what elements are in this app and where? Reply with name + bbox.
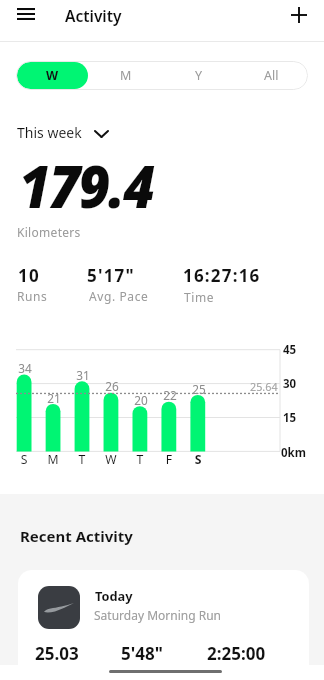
button[interactable]: Menu [6, 0, 44, 30]
staticText: 5'17" [87, 264, 135, 287]
staticText: 25 [183, 381, 215, 397]
staticText: T [124, 451, 156, 468]
button[interactable]: W [17, 62, 88, 89]
button[interactable]: This week [17, 119, 125, 143]
staticText: Time [184, 289, 215, 305]
staticText: S [8, 451, 40, 468]
staticText: 5'48" [121, 642, 163, 665]
staticText: 34 [9, 360, 41, 376]
staticText: 179.4 [19, 145, 153, 225]
staticText: 21 [38, 390, 70, 406]
staticText: W [46, 67, 59, 84]
staticText: Avg. Pace [89, 288, 149, 304]
staticText: 45 [283, 342, 297, 358]
staticText: 2:25:00 [207, 642, 266, 665]
staticText: 15 [283, 410, 297, 426]
staticText: Recent Activity [20, 526, 133, 546]
staticText: Activity [65, 5, 122, 26]
staticText: Y [195, 67, 203, 84]
staticText: F [153, 451, 185, 468]
staticText: Runs [17, 288, 48, 304]
staticText: M [120, 67, 132, 84]
button[interactable]: M [90, 62, 161, 89]
staticText: 25.64 [250, 379, 278, 394]
staticText: 20 [125, 392, 157, 408]
staticText: M [37, 451, 69, 468]
staticText: S [182, 451, 214, 468]
staticText: 31 [67, 367, 99, 383]
staticText: 22 [154, 387, 186, 403]
staticText: Today [95, 587, 133, 604]
button[interactable]: Y [163, 62, 234, 89]
button[interactable]: Add activity [280, 0, 318, 30]
staticText: 30 [283, 376, 297, 392]
staticText: 26 [96, 378, 128, 394]
staticText: W [95, 451, 127, 468]
staticText: 16:27:16 [183, 264, 261, 287]
staticText: Saturday Morning Run [94, 607, 221, 623]
staticText: 0km [281, 445, 306, 461]
staticText: T [66, 451, 98, 468]
button[interactable]: All [236, 62, 307, 89]
staticText: Kilometers [17, 224, 81, 240]
staticText: All [264, 67, 279, 84]
staticText: This week [17, 123, 82, 142]
button[interactable]: Today [18, 570, 309, 680]
staticText: 25.03 [35, 642, 79, 665]
staticText: 10 [18, 264, 40, 287]
